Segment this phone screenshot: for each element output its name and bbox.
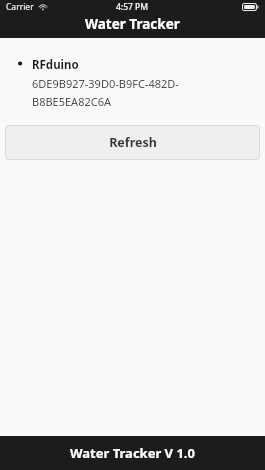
staticText: Water Tracker V 1.0 xyxy=(70,444,195,462)
staticText: Refresh xyxy=(109,134,157,151)
staticText: RFduino xyxy=(32,57,79,73)
button[interactable]: RFduino xyxy=(0,55,265,111)
staticText: Carrier xyxy=(6,1,34,13)
button[interactable]: Refresh xyxy=(5,125,260,160)
staticText: Water Tracker xyxy=(85,15,180,33)
staticText: B8BE5EA82C6A xyxy=(32,94,112,109)
staticText: 6DE9B927-39D0-B9FC-482D- xyxy=(32,76,179,91)
staticText: 4:57 PM xyxy=(116,1,149,13)
